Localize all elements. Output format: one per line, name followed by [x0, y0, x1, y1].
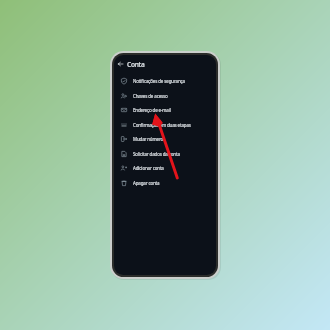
staticText: Solicitar dados da conta: [133, 151, 180, 157]
staticText: Mudar número: [133, 136, 164, 142]
button[interactable]: Notificações de segurança: [114, 74, 216, 88]
staticText: Apagar conta: [133, 180, 160, 186]
staticText: Chaves de acesso: [133, 93, 168, 99]
staticText: Confirmação em duas etapas: [133, 122, 191, 128]
button[interactable]: Confirmação em duas etapas: [114, 118, 216, 132]
staticText: Adicionar conta: [133, 165, 164, 171]
button[interactable]: Chaves de acesso: [114, 89, 216, 103]
button[interactable]: Back: [114, 57, 127, 70]
button[interactable]: Endereço de e-mail: [114, 103, 216, 117]
staticText: Notificações de segurança: [133, 78, 185, 84]
staticText: Endereço de e-mail: [133, 107, 171, 113]
button[interactable]: Adicionar conta: [114, 161, 216, 175]
button[interactable]: Solicitar dados da conta: [114, 147, 216, 161]
staticText: Conta: [127, 60, 145, 69]
button[interactable]: Apagar conta: [114, 176, 216, 190]
button[interactable]: Mudar número: [114, 132, 216, 146]
